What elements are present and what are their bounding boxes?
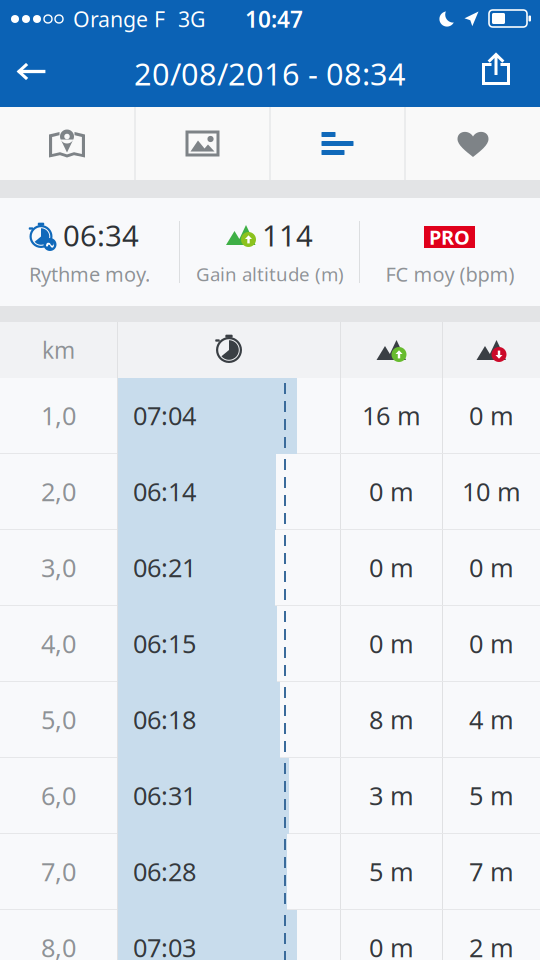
staticText: 3G [178, 5, 206, 33]
staticText: 07:04 [133, 399, 196, 432]
button[interactable]: Photos [135, 107, 269, 180]
staticText: 06:18 [133, 703, 196, 736]
staticText: 4 m [469, 703, 514, 736]
staticText: 114 [262, 215, 313, 254]
staticText: Orange F [73, 5, 165, 33]
staticText: 4,0 [41, 627, 76, 660]
button[interactable]: Share [476, 40, 540, 107]
staticText: 06:15 [133, 627, 196, 660]
staticText: 0 m [469, 627, 514, 660]
staticText: 07:03 [133, 931, 196, 960]
staticText: 2,0 [41, 475, 76, 508]
staticText: km [42, 335, 75, 365]
staticText: FC moy (bpm) [385, 261, 514, 287]
staticText: 5 m [469, 779, 514, 812]
staticText: 06:14 [133, 475, 196, 508]
staticText: 0 m [369, 931, 414, 960]
staticText: 7,0 [41, 855, 76, 888]
button[interactable]: Heart rate [405, 107, 540, 180]
staticText: 8 m [369, 703, 414, 736]
button[interactable]: Map [0, 107, 134, 180]
staticText: 7 m [469, 855, 514, 888]
staticText: 0 m [369, 551, 414, 584]
staticText: 06:34 [63, 215, 139, 254]
staticText: PRO [429, 224, 470, 250]
staticText: 20/08/2016 - 08:34 [134, 53, 406, 94]
staticText: 8,0 [41, 931, 76, 960]
staticText: Rythme moy. [29, 261, 150, 287]
staticText: 1,0 [41, 399, 76, 432]
staticText: 5 m [369, 855, 414, 888]
staticText: 0 m [469, 551, 514, 584]
staticText: 06:28 [133, 855, 196, 888]
staticText: 6,0 [41, 779, 76, 812]
staticText: Gain altitude (m) [196, 262, 344, 286]
button[interactable]: Splits [270, 107, 404, 180]
staticText: 16 m [362, 399, 421, 432]
button[interactable]: Back [0, 40, 62, 107]
staticText: 3 m [369, 779, 414, 812]
staticText: 10 m [462, 475, 521, 508]
staticText: 06:31 [133, 779, 196, 812]
staticText: 5,0 [41, 703, 76, 736]
staticText: 06:21 [133, 551, 196, 584]
staticText: 3,0 [41, 551, 76, 584]
staticText: 0 m [469, 399, 514, 432]
staticText: 0 m [369, 475, 414, 508]
staticText: 2 m [469, 931, 514, 960]
staticText: 0 m [369, 627, 414, 660]
staticText: 10:47 [245, 4, 303, 34]
